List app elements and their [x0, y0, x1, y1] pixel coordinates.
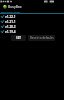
button[interactable]: Reset to defaults — [28, 35, 55, 41]
staticText: Reset to defaults — [30, 36, 54, 40]
staticText: SET — [16, 36, 22, 40]
button[interactable]: v1.22.1 — [0, 14, 64, 19]
staticText: v1.22.1 — [5, 15, 16, 19]
button[interactable]: App icon — [0, 3, 64, 10]
button[interactable]: v1.19.4 — [0, 29, 64, 34]
staticText: v1.20.2 — [5, 25, 16, 29]
staticText: BusyBox — [8, 4, 22, 9]
button[interactable]: SET — [11, 35, 26, 41]
button[interactable]: v1.21.1 — [0, 19, 64, 24]
other: App icon — [3, 4, 7, 9]
button[interactable]: v1.20.2 — [0, 24, 64, 29]
staticText: v1.21.1 — [5, 20, 16, 24]
staticText: Select busybox version — [1, 11, 21, 13]
staticText: v1.19.4 — [5, 30, 16, 34]
